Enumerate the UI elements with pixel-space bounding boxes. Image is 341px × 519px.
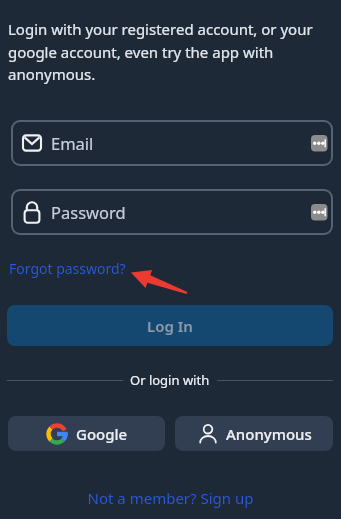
staticText: Anonymous xyxy=(226,424,312,444)
button[interactable]: Google xyxy=(8,416,165,451)
staticText: Password xyxy=(51,201,126,223)
staticText: Or login with xyxy=(130,371,210,389)
button[interactable]: Email xyxy=(11,120,333,166)
button[interactable]: Anonymous xyxy=(175,416,333,451)
staticText: Log In xyxy=(147,316,193,336)
staticText: Email xyxy=(51,132,94,154)
button[interactable]: Not a member? Sign up xyxy=(0,488,341,508)
button[interactable]: Forgot password? xyxy=(9,259,126,278)
button[interactable]: Log In xyxy=(7,305,333,346)
staticText: Google xyxy=(76,424,128,444)
staticText: Login with your registered account, or y… xyxy=(8,19,313,84)
button[interactable]: Password xyxy=(11,189,333,235)
